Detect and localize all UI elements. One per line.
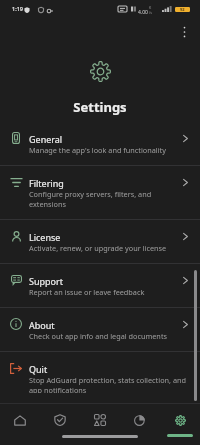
staticText: 4.00 xyxy=(138,9,148,16)
staticText: K xyxy=(149,5,152,10)
staticText: Configure proxy servers, filters, and ex… xyxy=(29,189,174,209)
staticText: Filtering xyxy=(29,177,64,189)
button[interactable]: Support xyxy=(0,264,200,307)
staticText: Quit xyxy=(29,363,48,375)
staticText: Activate, renew, or upgrade your license xyxy=(29,243,167,253)
staticText: /s xyxy=(149,10,152,15)
button[interactable]: License xyxy=(0,220,200,263)
button[interactable]: Home xyxy=(0,404,40,436)
staticText: Manage the app's look and functionality xyxy=(29,145,166,155)
button[interactable]: Apps xyxy=(80,404,120,436)
staticText: About xyxy=(29,319,55,331)
staticText: Stop AdGuard protection, stats collectio… xyxy=(29,375,192,393)
staticText: 92 xyxy=(180,7,185,12)
button[interactable]: Quit xyxy=(0,352,200,403)
staticText: Support xyxy=(29,275,63,287)
button[interactable]: General xyxy=(0,122,200,165)
button[interactable]: Settings xyxy=(160,404,200,436)
staticText: Settings xyxy=(73,98,127,116)
button[interactable]: Statistics xyxy=(120,404,160,436)
button[interactable]: Filtering xyxy=(0,166,200,219)
staticText: 1:19 xyxy=(12,5,23,12)
staticText: License xyxy=(29,231,61,243)
button[interactable]: More options xyxy=(175,23,193,41)
button[interactable]: About xyxy=(0,308,200,351)
button[interactable]: Protection xyxy=(40,404,80,436)
staticText: Check out app info and legal documents xyxy=(29,331,168,341)
staticText: Report an issue or leave feedback xyxy=(29,287,145,297)
staticText: General xyxy=(29,133,63,145)
